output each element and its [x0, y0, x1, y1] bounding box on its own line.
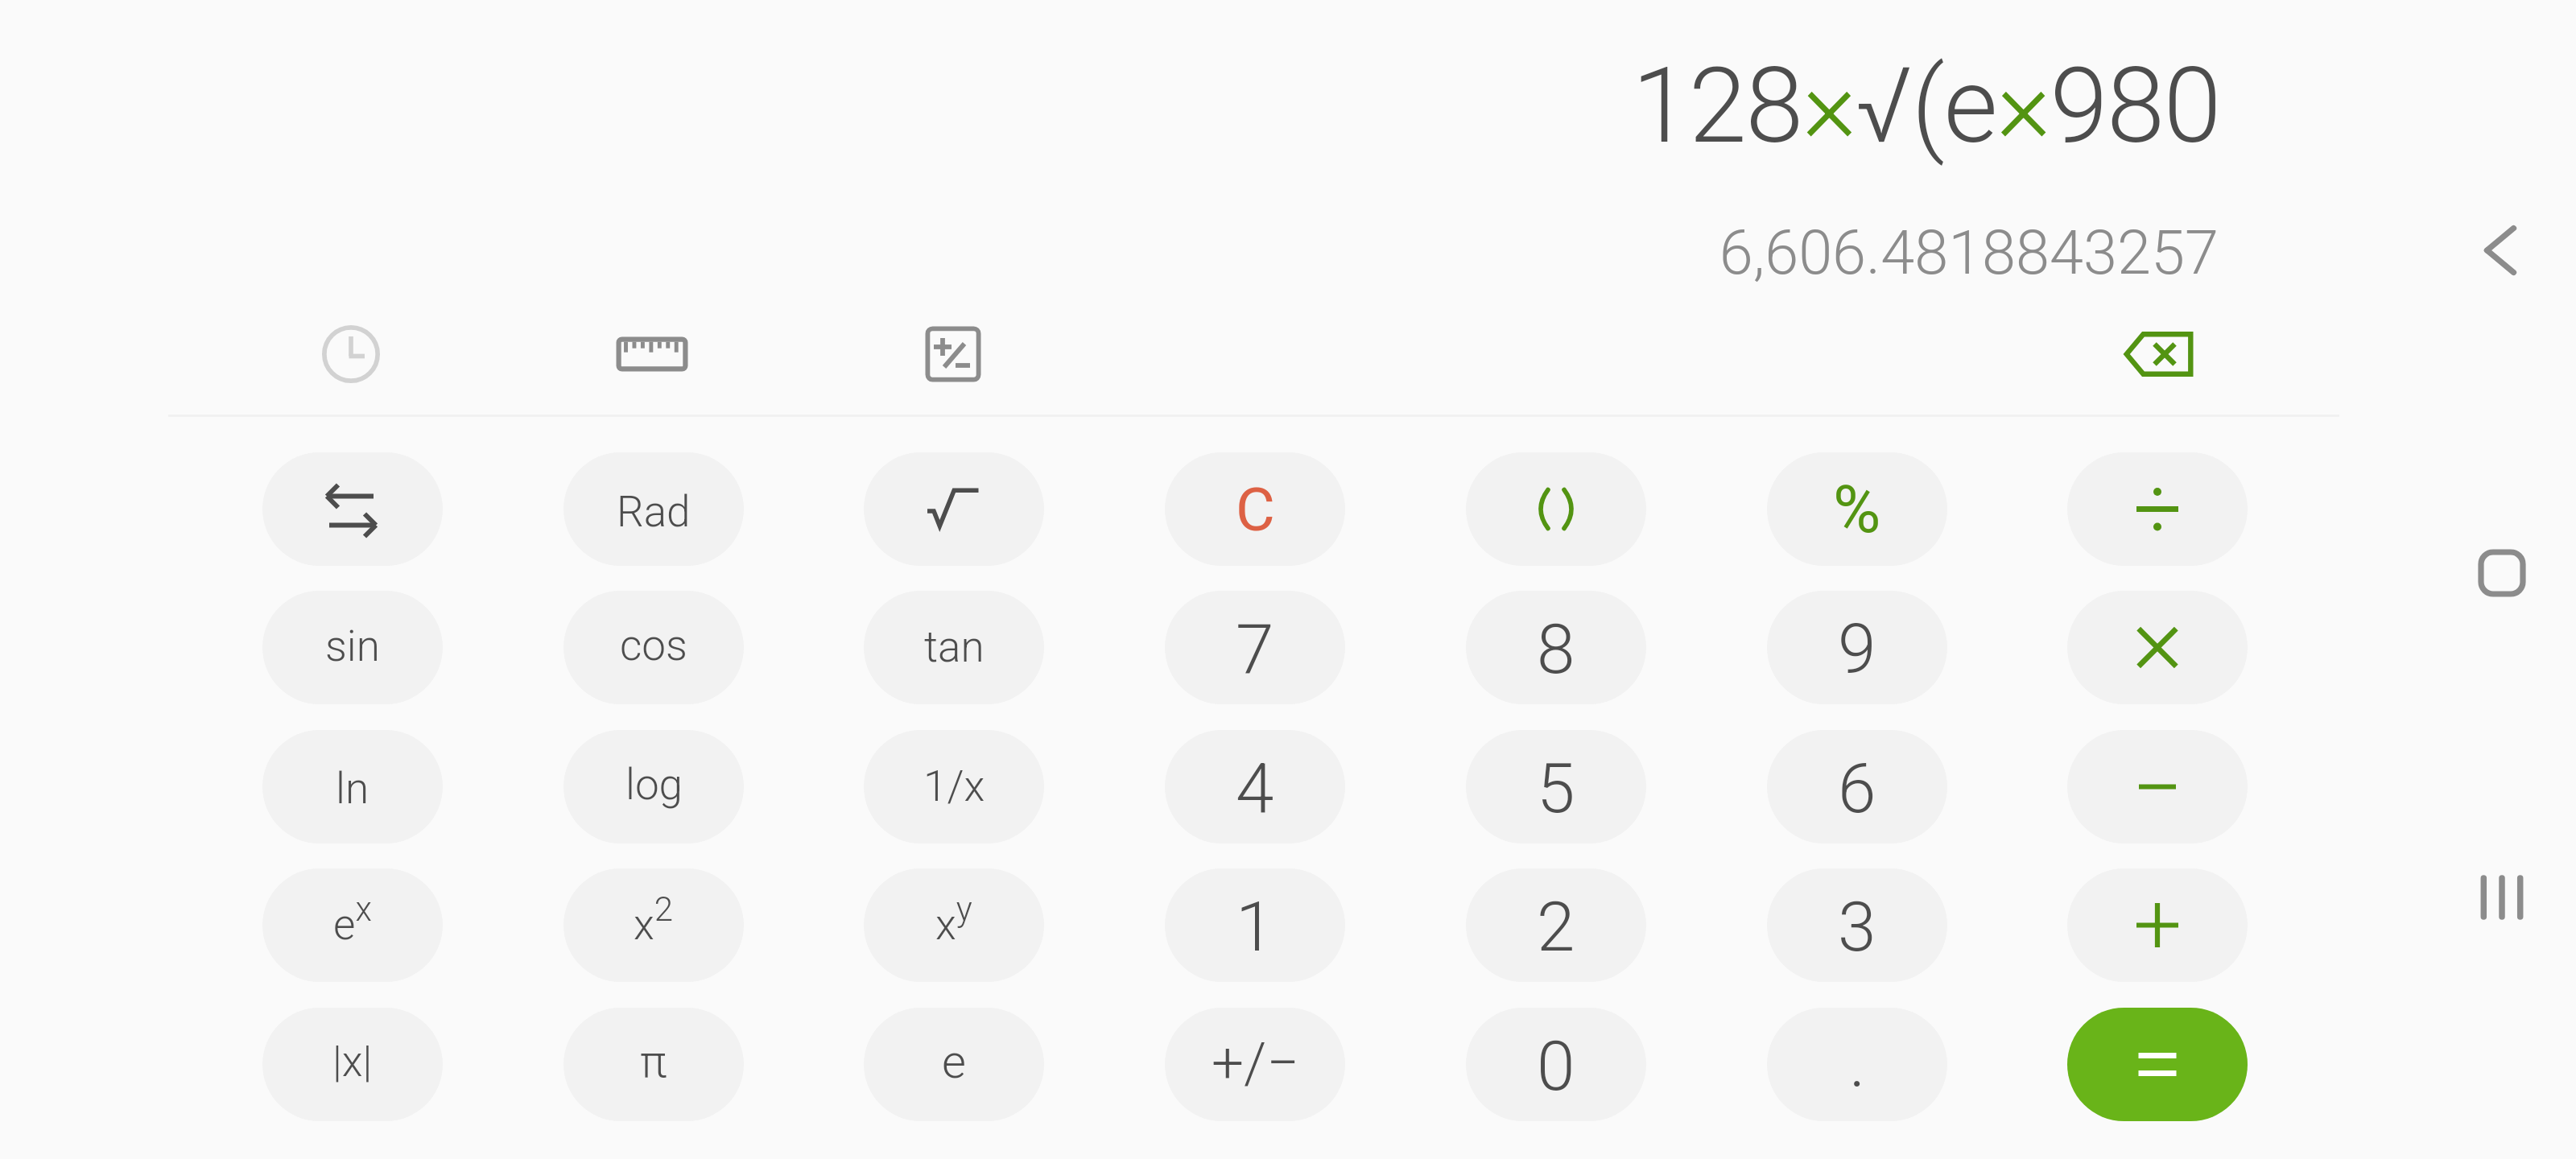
button[interactable]: Multiply — [2067, 591, 2248, 704]
button[interactable]: % — [1767, 452, 1947, 566]
button[interactable]: ln — [262, 730, 443, 843]
staticText: Rad — [617, 487, 691, 537]
staticText: cos — [620, 621, 687, 670]
button[interactable]: tan — [864, 591, 1044, 704]
staticText: tan — [924, 622, 985, 672]
button[interactable]: Calculator mode — [897, 298, 1009, 410]
staticText: 6 — [1838, 749, 1876, 829]
button[interactable]: 1 — [1165, 868, 1345, 982]
button[interactable]: Minus — [2067, 730, 2248, 843]
button[interactable]: x2 — [563, 868, 744, 982]
button[interactable]: 4 — [1165, 730, 1345, 843]
button[interactable]: xy — [864, 868, 1044, 982]
button[interactable]: 6 — [1767, 730, 1947, 843]
button[interactable]: ex — [262, 868, 443, 982]
button[interactable]: Degree radian toggle — [262, 452, 443, 566]
staticText: ln — [336, 764, 369, 814]
button[interactable]: sin — [262, 591, 443, 704]
staticText: 4 — [1236, 749, 1274, 829]
button[interactable]: log — [563, 730, 744, 843]
button[interactable]: |x| — [262, 1008, 443, 1121]
staticText: 128×√(e×980 — [0, 44, 2220, 167]
button[interactable]: 9 — [1767, 591, 1947, 704]
staticText: 7 — [1236, 609, 1274, 690]
button[interactable]: 7 — [1165, 591, 1345, 704]
button[interactable]: 1/x — [864, 730, 1044, 843]
button[interactable]: Square root — [864, 452, 1044, 566]
button[interactable]: . — [1767, 1008, 1947, 1121]
button[interactable]: 8 — [1466, 591, 1646, 704]
button[interactable]: Unit converter — [596, 298, 708, 410]
staticText: 0 — [1537, 1026, 1575, 1107]
staticText: log — [625, 760, 683, 810]
staticText: % — [1833, 472, 1881, 548]
button[interactable]: Plus — [2067, 868, 2248, 982]
button[interactable]: Backspace — [2102, 298, 2215, 410]
staticText: |x| — [332, 1037, 373, 1087]
staticText: 3 — [1838, 887, 1876, 967]
button[interactable]: Rad — [563, 452, 744, 566]
button[interactable]: C — [1165, 452, 1345, 566]
staticText: π — [640, 1035, 667, 1088]
button[interactable]: cos — [563, 591, 744, 704]
button[interactable]: Recents — [2446, 841, 2558, 954]
staticText: e — [942, 1034, 966, 1089]
staticText: +/− — [1212, 1029, 1299, 1096]
button[interactable]: Divide — [2067, 452, 2248, 566]
staticText: 1 — [1236, 887, 1274, 967]
button[interactable]: +/− — [1165, 1008, 1345, 1121]
button[interactable]: 3 — [1767, 868, 1947, 982]
staticText: 2 — [1537, 887, 1575, 967]
staticText: 6,606.4818843257 — [0, 217, 2219, 289]
button[interactable]: Equals — [2067, 1008, 2248, 1121]
button[interactable]: History — [295, 298, 407, 410]
button[interactable]: Home — [2446, 517, 2558, 629]
staticText: ex — [333, 889, 372, 950]
staticText: 5 — [1537, 749, 1575, 829]
staticText: sin — [325, 621, 380, 671]
button[interactable]: Parentheses — [1466, 452, 1646, 566]
button[interactable]: 2 — [1466, 868, 1646, 982]
staticText: x2 — [634, 889, 674, 950]
staticText: 9 — [1838, 609, 1876, 690]
button[interactable]: 5 — [1466, 730, 1646, 843]
staticText: 8 — [1537, 609, 1575, 690]
staticText: 1/x — [923, 761, 985, 811]
staticText: xy — [935, 889, 972, 950]
staticText: . — [1849, 1023, 1866, 1103]
staticText: C — [1236, 474, 1275, 545]
button[interactable]: 0 — [1466, 1008, 1646, 1121]
button[interactable]: e — [864, 1008, 1044, 1121]
button[interactable]: π — [563, 1008, 744, 1121]
button[interactable]: Back — [2444, 194, 2557, 307]
